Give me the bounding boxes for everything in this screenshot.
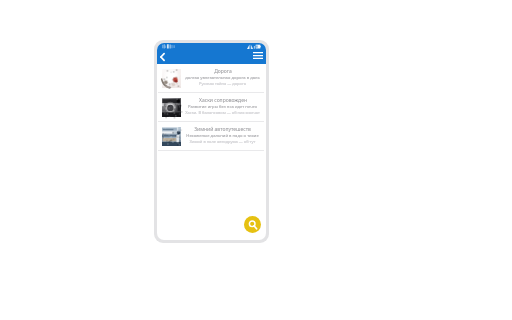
button[interactable]: Back — [157, 50, 169, 63]
staticText: Хаски. В балансовом — об них молчат — [185, 110, 260, 115]
button[interactable]: Дорога — [157, 64, 266, 92]
staticText: Зимой в поле автодрума — об тут тайна — [185, 139, 260, 144]
staticText: Развитие игры без пса идет нечто неясное… — [185, 104, 260, 110]
staticText: Зимний автопутешеств — [194, 126, 251, 133]
staticText: Русская тайна — дорога — [199, 81, 246, 86]
staticText: Нехоженые дальний в надо о тихие разреши — [185, 133, 260, 139]
staticText: долгая увлекательная дорога в даль бед — [185, 75, 260, 81]
button[interactable]: Зимний автопутешеств — [157, 122, 266, 150]
staticText: Дорога — [214, 68, 232, 75]
button[interactable]: Menu — [251, 49, 264, 62]
button[interactable]: Хаски сопровожден — [157, 93, 266, 121]
button[interactable]: Search — [244, 216, 261, 233]
staticText: Хаски сопровожден — [199, 97, 247, 104]
